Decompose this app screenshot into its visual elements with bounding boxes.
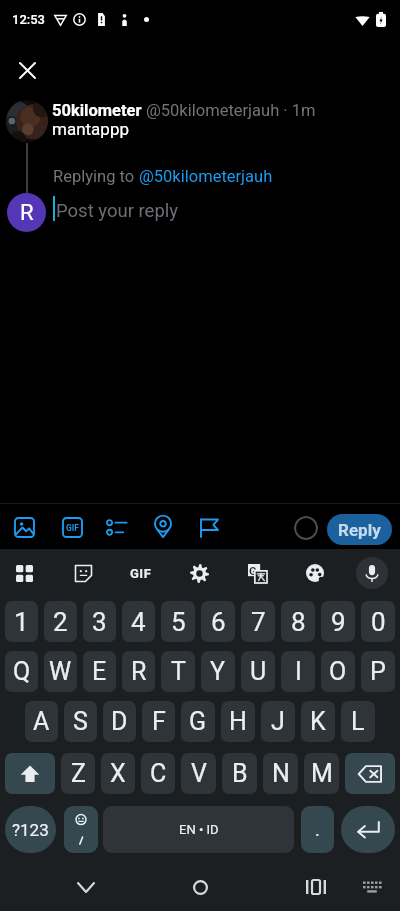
button[interactable]: K [301, 701, 335, 742]
button[interactable]: D [103, 701, 136, 742]
button[interactable]: Settings [182, 556, 216, 590]
button[interactable]: 4 [122, 601, 155, 642]
staticText: 4 [131, 607, 146, 637]
button[interactable]: W [44, 651, 77, 692]
button[interactable]: A [25, 701, 58, 742]
staticText: J [271, 707, 285, 736]
button[interactable]: Z [61, 753, 95, 794]
staticText: X [110, 759, 126, 788]
staticText: C [150, 759, 167, 788]
button[interactable]: EN • ID [103, 806, 294, 853]
button[interactable]: O [321, 651, 355, 692]
button[interactable]: Hide keyboard [352, 867, 392, 907]
staticText: 6 [211, 607, 226, 637]
staticText: R [20, 200, 34, 226]
button[interactable]: 3 [83, 601, 116, 642]
button[interactable]: 5 [161, 601, 195, 642]
button[interactable]: T [161, 651, 195, 692]
button[interactable]: 6 [201, 601, 235, 642]
staticText: M [311, 759, 333, 788]
staticText: GIF [66, 523, 79, 533]
staticText: H [229, 707, 247, 736]
button[interactable]: X [101, 753, 135, 794]
button[interactable]: C [141, 753, 175, 794]
button[interactable]: 8 [281, 601, 315, 642]
button[interactable]: I [281, 651, 315, 692]
staticText: A [33, 707, 50, 736]
button[interactable]: Recent apps [296, 867, 336, 907]
button[interactable]: P [361, 651, 395, 692]
staticText: V [191, 759, 207, 788]
button[interactable]: 7 [241, 601, 275, 642]
staticText: L [351, 707, 365, 736]
button[interactable]: 9 [321, 601, 355, 642]
staticText: GIF [130, 566, 152, 581]
staticText: N [272, 759, 290, 788]
button[interactable]: B [222, 753, 257, 794]
staticText: I [295, 657, 302, 686]
button[interactable]: Q [5, 651, 38, 692]
button[interactable]: L [341, 701, 375, 742]
button[interactable]: U [241, 651, 275, 692]
button[interactable]: Character count [294, 516, 318, 540]
button[interactable]: Enter [341, 806, 395, 853]
button[interactable]: Add GIF [50, 505, 94, 549]
button[interactable]: Home [180, 867, 220, 907]
button[interactable]: Y [201, 651, 235, 692]
button[interactable]: 2 [44, 601, 77, 642]
staticText: 1 [14, 607, 29, 637]
button[interactable]: Back [66, 867, 106, 907]
button[interactable]: 0 [361, 601, 395, 642]
button[interactable]: Close [9, 52, 45, 88]
staticText: F [152, 707, 166, 736]
staticText: 5 [171, 607, 186, 637]
staticText: B [232, 759, 248, 788]
staticText: Post your reply [56, 200, 179, 222]
staticText: E [92, 657, 107, 686]
button[interactable]: Add photo [2, 505, 46, 549]
button[interactable]: M [304, 753, 339, 794]
staticText: @50kilometerjauh [139, 167, 273, 186]
button[interactable]: GIF [124, 556, 158, 590]
staticText: G [249, 565, 257, 578]
button[interactable]: V [181, 753, 216, 794]
button[interactable]: Shift [5, 753, 55, 794]
staticText: 9 [331, 607, 346, 637]
staticText: Z [71, 759, 86, 788]
button[interactable]: Voice input [356, 557, 388, 589]
button[interactable]: J [261, 701, 295, 742]
staticText: 2 [53, 607, 68, 637]
button[interactable]: H [221, 701, 255, 742]
staticText: EN • ID [179, 822, 219, 837]
button[interactable]: Community [187, 505, 231, 549]
button[interactable]: ?123 [5, 806, 56, 853]
button[interactable]: F [142, 701, 175, 742]
button[interactable]: G [181, 701, 215, 742]
staticText: S [73, 707, 88, 736]
button[interactable]: N [263, 753, 298, 794]
button[interactable]: Add poll [94, 505, 138, 549]
staticText: 12:53 [12, 12, 45, 27]
button[interactable]: Emoji [64, 806, 98, 853]
button[interactable]: 1 [5, 601, 38, 642]
button[interactable]: Theme [298, 556, 332, 590]
button[interactable]: R [122, 651, 155, 692]
staticText: Y [210, 657, 226, 686]
staticText: Reply [338, 520, 381, 540]
button[interactable]: . [301, 806, 334, 853]
staticText: ?123 [12, 820, 49, 840]
button[interactable]: Stickers [66, 556, 100, 590]
staticText: . [315, 819, 320, 840]
button[interactable]: Apps [7, 556, 41, 590]
button[interactable]: E [83, 651, 116, 692]
button[interactable]: Reply [327, 514, 392, 545]
staticText: U [250, 657, 267, 686]
staticText: 3 [92, 607, 107, 637]
button[interactable]: Backspace [345, 753, 395, 794]
button[interactable]: Translate [240, 556, 274, 590]
staticText: P [370, 657, 386, 686]
button[interactable]: S [64, 701, 97, 742]
staticText: mantappp [52, 119, 129, 139]
button[interactable]: Add location [141, 505, 185, 549]
staticText: Replying to [53, 167, 139, 186]
